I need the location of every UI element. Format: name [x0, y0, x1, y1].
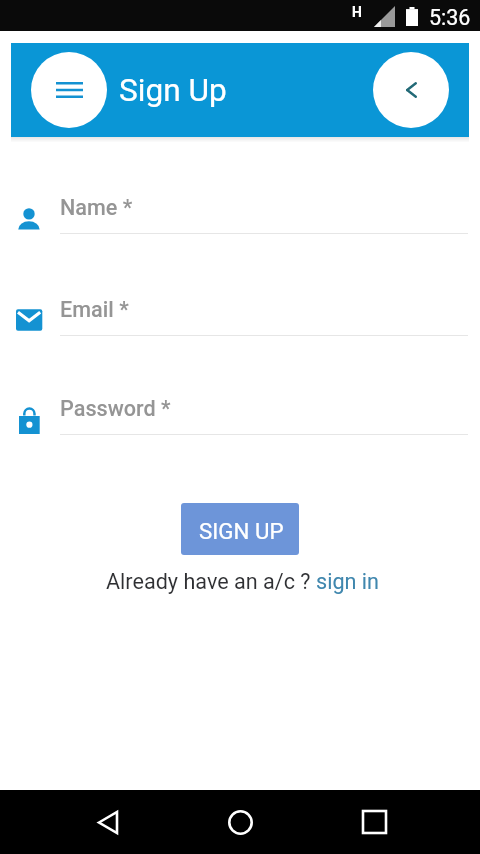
staticText: 5:36: [429, 5, 471, 30]
staticText: H: [352, 4, 362, 20]
staticText: Email *: [60, 297, 129, 322]
staticText: Already have an a/c ?: [106, 569, 316, 594]
button[interactable]: Back: [373, 52, 449, 128]
button[interactable]: Name *: [0, 195, 480, 243]
button[interactable]: Password *: [0, 396, 480, 444]
button[interactable]: SIGN UP: [181, 503, 299, 555]
button[interactable]: Email *: [0, 297, 480, 345]
button[interactable]: Open navigation menu: [31, 52, 107, 128]
button[interactable]: sign in: [316, 569, 379, 594]
staticText: Sign Up: [119, 72, 227, 109]
button[interactable]: Back: [86, 800, 130, 844]
button[interactable]: Recent apps: [352, 800, 396, 844]
staticText: Password *: [60, 396, 171, 421]
staticText: Name *: [60, 195, 133, 220]
button[interactable]: Home: [218, 800, 262, 844]
staticText: SIGN UP: [199, 518, 284, 544]
